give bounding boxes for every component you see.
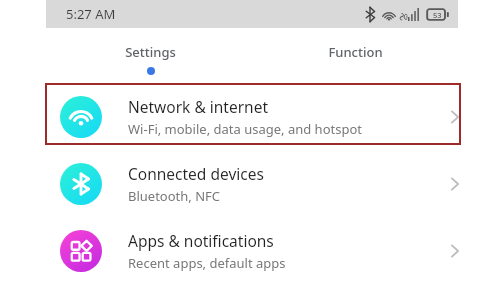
staticText: Bluetooth, NFC [128,187,221,205]
button[interactable]: Connected devices [0,150,500,217]
staticText: Apps & notifications [128,230,274,251]
staticText: 53 [433,10,442,20]
staticText: Recent apps, default apps [128,254,286,272]
staticText: 5:27 AM [66,5,116,23]
button[interactable]: Settings [100,28,200,83]
staticText: Function [328,43,383,61]
other: Open Connected devices [440,169,470,199]
staticText: Settings [125,43,176,61]
other: Open Network & internet [440,102,470,132]
button[interactable]: Network & internet [0,83,500,150]
button[interactable]: Apps & notifications [0,217,500,284]
button[interactable]: Function [305,28,405,83]
staticText: Connected devices [128,163,264,184]
staticText: Network & internet [128,96,268,117]
other: Open Apps & notifications [440,236,470,266]
staticText: Wi-Fi, mobile, data usage, and hotspot [128,120,362,138]
